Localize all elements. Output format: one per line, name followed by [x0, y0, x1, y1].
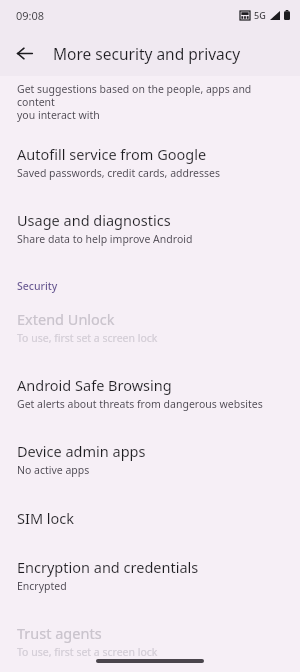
staticText: No active apps [17, 463, 90, 477]
button[interactable]: Trust agents [0, 605, 300, 671]
staticText: Encrypted [17, 579, 67, 593]
button[interactable]: Usage and diagnostics [0, 192, 300, 258]
staticText: Trust agents [17, 623, 102, 643]
staticText: 5G [254, 9, 266, 21]
staticText: To use, first set a screen lock [17, 645, 158, 659]
button[interactable]: Extend Unlock [0, 293, 300, 357]
staticText: Extend Unlock [17, 309, 115, 329]
staticText: Get alerts about threats from dangerous … [17, 397, 263, 411]
staticText: Security [17, 279, 58, 293]
button[interactable]: Device admin apps [0, 423, 300, 489]
staticText: To use, first set a screen lock [17, 331, 158, 345]
staticText: More security and privacy [53, 43, 241, 64]
button[interactable]: Android Safe Browsing [0, 357, 300, 423]
staticText: Get suggestions based on the people, app… [17, 82, 288, 122]
button[interactable]: Encryption and credentials [0, 542, 300, 605]
staticText: Saved passwords, credit cards, addresses [17, 166, 220, 180]
staticText: Autofill service from Google [17, 144, 207, 164]
staticText: Share data to help improve Android [17, 232, 193, 246]
staticText: 09:08 [16, 8, 45, 23]
staticText: Device admin apps [17, 441, 146, 461]
staticText: Usage and diagnostics [17, 210, 171, 230]
staticText: Android Safe Browsing [17, 375, 172, 395]
staticText: SIM lock [17, 508, 75, 528]
button[interactable]: SIM lock [0, 489, 300, 542]
button[interactable]: Autofill service from Google [0, 122, 300, 192]
staticText: Encryption and credentials [17, 557, 199, 577]
button[interactable]: Back [6, 35, 42, 71]
